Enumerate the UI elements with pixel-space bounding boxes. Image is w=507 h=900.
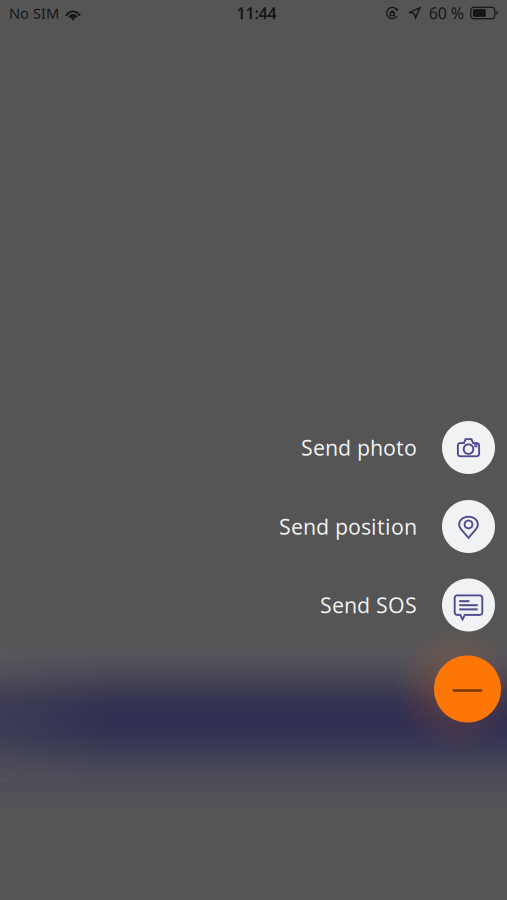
staticText: 60 % bbox=[429, 2, 464, 24]
staticText: No SIM bbox=[9, 3, 59, 23]
button[interactable]: Send SOS bbox=[0, 566, 507, 644]
staticText: 11:44 bbox=[236, 2, 276, 24]
staticText: Send position bbox=[279, 512, 417, 541]
staticText: Send SOS bbox=[320, 591, 417, 619]
staticText: Send photo bbox=[301, 433, 417, 462]
button[interactable]: Send photo bbox=[0, 408, 507, 487]
button[interactable]: Close actions menu bbox=[0, 644, 507, 734]
button[interactable]: Send position bbox=[0, 487, 507, 566]
